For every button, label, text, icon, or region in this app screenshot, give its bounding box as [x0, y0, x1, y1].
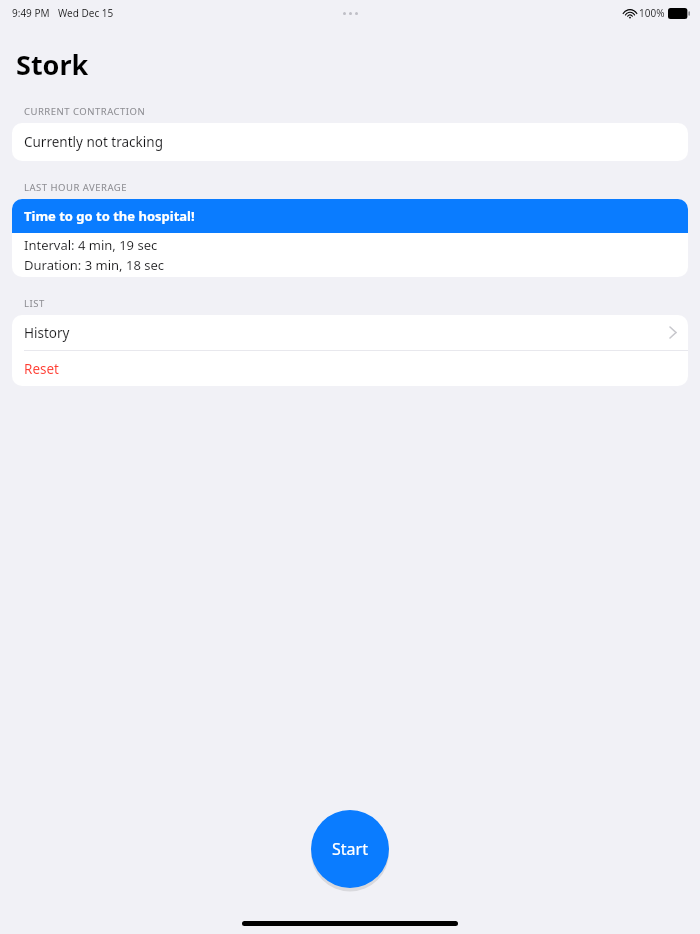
- staticText: History: [24, 324, 70, 342]
- button[interactable]: Reset: [12, 351, 688, 386]
- staticText: Duration: 3 min, 18 sec: [24, 256, 165, 274]
- staticText: Currently not tracking: [24, 133, 163, 151]
- button[interactable]: Interval: 4 min, 19 sec: [12, 233, 688, 277]
- staticText: Interval: 4 min, 19 sec: [24, 236, 158, 254]
- staticText: CURRENT CONTRACTION: [24, 105, 146, 118]
- staticText: LAST HOUR AVERAGE: [24, 181, 127, 194]
- staticText: Start: [332, 838, 368, 860]
- button[interactable]: Currently not tracking: [12, 123, 688, 161]
- staticText: LIST: [24, 297, 45, 310]
- staticText: 9:49 PM: [12, 6, 50, 20]
- staticText: Time to go to the hospital!: [24, 207, 195, 225]
- staticText: Stork: [16, 46, 89, 83]
- staticText: Wed Dec 15: [58, 6, 114, 20]
- staticText: Reset: [24, 360, 59, 378]
- button[interactable]: Time to go to the hospital!: [12, 199, 688, 233]
- button[interactable]: History: [12, 315, 688, 350]
- other: Open history: [670, 327, 676, 338]
- button[interactable]: Start: [311, 810, 389, 888]
- staticText: 100%: [639, 6, 665, 20]
